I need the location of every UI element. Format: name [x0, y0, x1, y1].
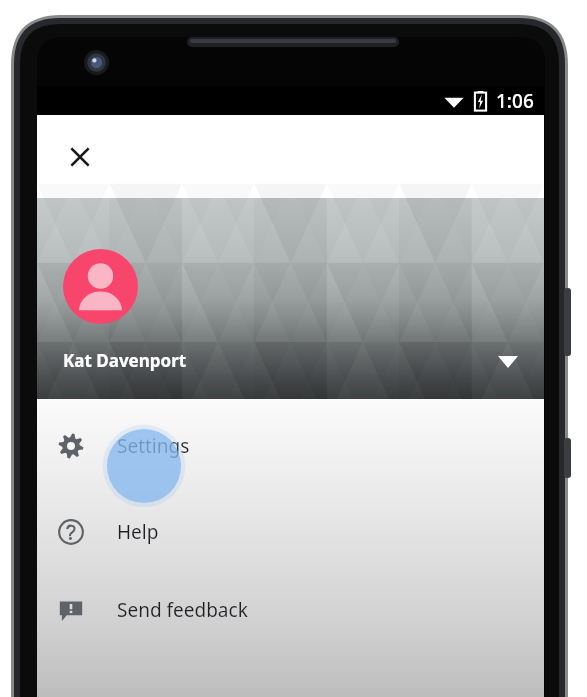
button[interactable]: Account avatar — [63, 249, 138, 324]
staticText: Help — [117, 519, 159, 545]
staticText: Kat Davenport — [63, 349, 187, 372]
staticText: Send feedback — [117, 597, 248, 623]
button[interactable]: Show accounts — [486, 340, 530, 384]
button[interactable]: Close — [55, 132, 105, 182]
button[interactable]: Help — [37, 493, 544, 571]
staticText: 1:06 — [496, 88, 534, 114]
staticText: Settings — [117, 433, 190, 459]
button[interactable]: Settings — [37, 399, 544, 493]
button[interactable]: Send feedback — [37, 571, 544, 649]
